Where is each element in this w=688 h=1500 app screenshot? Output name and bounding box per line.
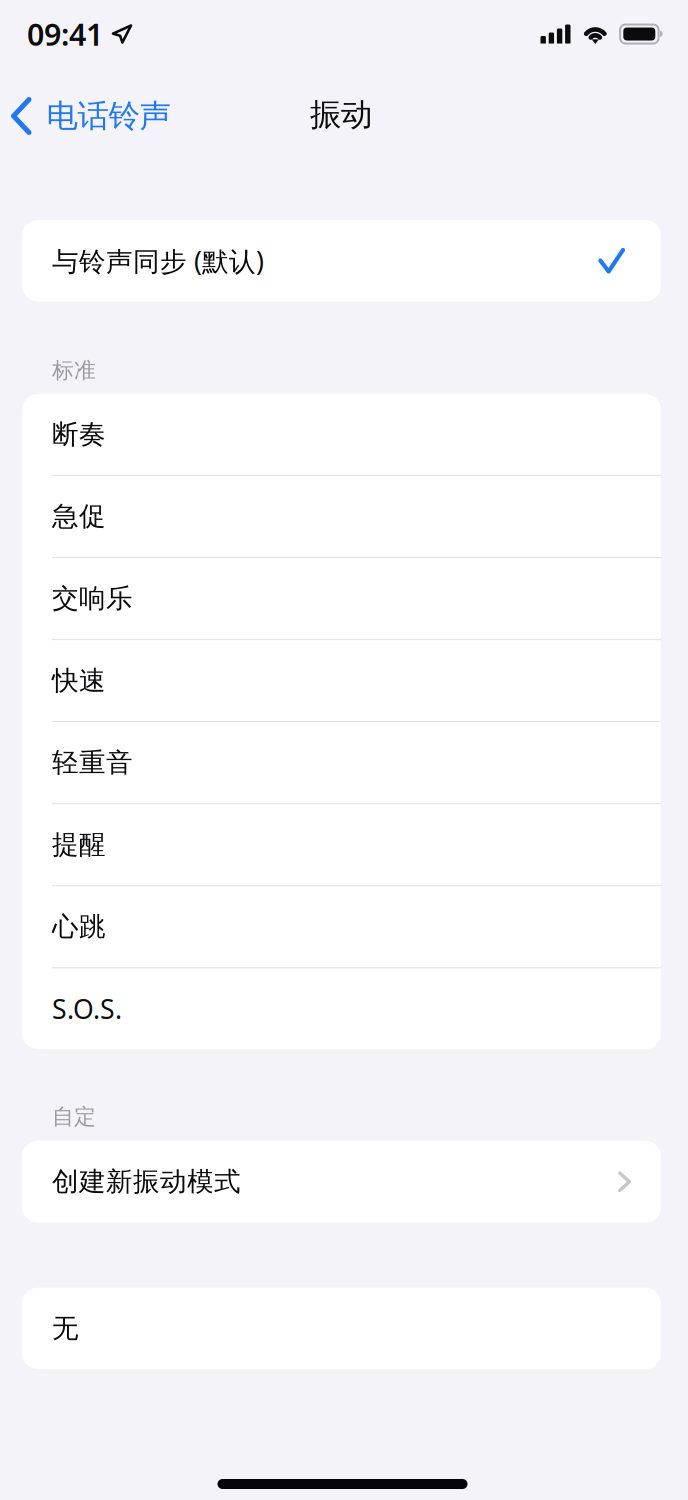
button[interactable]: 提醒	[22, 804, 661, 885]
button[interactable]: 轻重音	[22, 722, 661, 803]
staticText: 心跳	[52, 910, 106, 943]
staticText: 快速	[52, 664, 106, 697]
button[interactable]: 交响乐	[22, 558, 661, 639]
button[interactable]: 电话铃声	[0, 94, 250, 138]
staticText: 09:41	[27, 13, 103, 55]
staticText: 交响乐	[52, 582, 133, 615]
button[interactable]: 快速	[22, 640, 661, 721]
staticText: 轻重音	[52, 746, 133, 779]
button[interactable]: S.O.S.	[22, 968, 661, 1049]
button[interactable]: 与铃声同步 (默认)	[22, 220, 661, 301]
button[interactable]: 急促	[22, 476, 661, 557]
staticText: S.O.S.	[52, 991, 122, 1027]
staticText: 提醒	[52, 828, 106, 861]
staticText: 无	[52, 1312, 79, 1345]
staticText: 断奏	[52, 418, 106, 451]
button[interactable]: 创建新振动模式	[22, 1141, 661, 1223]
button[interactable]: 无	[22, 1288, 661, 1369]
staticText: 电话铃声	[46, 96, 170, 136]
button[interactable]: 心跳	[22, 886, 661, 967]
staticText: 急促	[52, 500, 106, 533]
staticText: 与铃声同步 (默认)	[52, 243, 264, 279]
staticText: 创建新振动模式	[52, 1165, 241, 1198]
staticText: 自定	[52, 1103, 96, 1130]
staticText: 标准	[52, 357, 96, 384]
staticText: 振动	[310, 95, 372, 135]
button[interactable]: 断奏	[22, 394, 661, 475]
